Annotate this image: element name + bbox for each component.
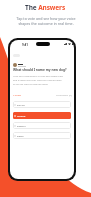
staticText: I just got a new pup! It's a boy with fl… [13,75,63,86]
button[interactable]: Bagel [13,132,71,139]
staticText: What should I name my new dog? [13,68,67,72]
staticText: Bowser [17,124,26,127]
staticText: Comments (0) [56,93,72,96]
staticText: 9:41 [22,43,28,47]
button[interactable]: Biscuit [13,101,71,108]
staticText: Cooper [17,114,26,117]
staticText: Bagel [17,134,24,137]
staticText: Biscuit [17,103,25,106]
staticText: The Answers [25,3,66,12]
button[interactable]: Bowser [13,122,71,129]
staticText: 4 votes [13,93,22,96]
button[interactable]: Cooper [13,112,71,119]
button[interactable]: Back [13,54,20,57]
staticText: Tap to vote and see how your voice shape… [16,16,76,26]
